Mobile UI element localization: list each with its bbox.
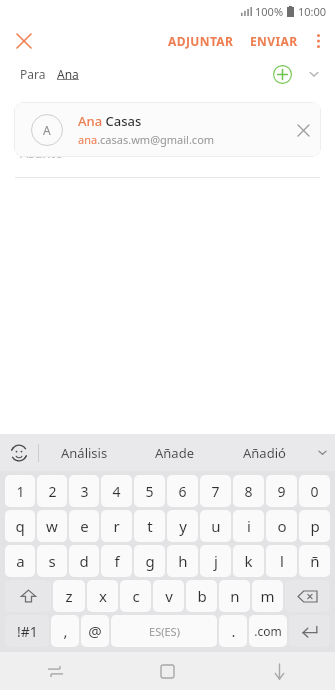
button[interactable]: 2	[37, 475, 67, 507]
button[interactable]: w	[37, 510, 67, 542]
button[interactable]: ES(ES)	[111, 615, 217, 647]
button[interactable]: 0	[299, 475, 330, 507]
staticText: Análisis	[61, 444, 108, 462]
staticText: c	[132, 586, 140, 606]
staticText: 5	[145, 482, 154, 501]
button[interactable]: Añadió	[219, 434, 309, 471]
staticText: u	[211, 516, 221, 536]
button[interactable]: a	[5, 545, 35, 577]
staticText: 2	[48, 482, 57, 501]
staticText: 4	[112, 482, 121, 501]
staticText: b	[197, 586, 207, 606]
staticText: q	[15, 516, 25, 536]
button[interactable]: ñ	[299, 545, 330, 577]
button[interactable]: Borrar	[285, 580, 330, 612]
staticText: Asunto	[20, 144, 64, 162]
button[interactable]: j	[200, 545, 231, 577]
staticText: s	[48, 551, 56, 571]
button[interactable]: g	[134, 545, 165, 577]
button[interactable]: f	[101, 545, 132, 577]
staticText: 6	[178, 482, 187, 501]
button[interactable]: 4	[101, 475, 132, 507]
button[interactable]: 9	[266, 475, 297, 507]
button[interactable]: x	[87, 580, 118, 612]
staticText: ,	[63, 621, 68, 641]
button[interactable]: Emoji	[0, 434, 38, 471]
button[interactable]: s	[37, 545, 67, 577]
staticText: g	[145, 551, 155, 571]
staticText: .	[231, 621, 236, 641]
button[interactable]: Expandir	[301, 61, 327, 87]
button[interactable]: Añade	[129, 434, 219, 471]
staticText: t	[147, 516, 153, 536]
button[interactable]: .	[219, 615, 247, 647]
button[interactable]: Cambiar teclado	[0, 652, 111, 690]
staticText: ana.casas.wm@gmail.com	[78, 132, 215, 147]
button[interactable]: b	[186, 580, 217, 612]
staticText: Añadió	[243, 444, 286, 462]
staticText: !#1	[17, 622, 38, 641]
button[interactable]: Añadir destinatario	[269, 61, 295, 87]
staticText: 7	[211, 482, 220, 501]
button[interactable]: Más sugerencias	[309, 434, 335, 471]
staticText: 0	[310, 482, 319, 501]
staticText: Añade	[155, 444, 194, 462]
button[interactable]: m	[252, 580, 283, 612]
button[interactable]: q	[5, 510, 35, 542]
button[interactable]: r	[101, 510, 132, 542]
staticText: @	[88, 621, 102, 641]
staticText: l	[280, 551, 284, 571]
button[interactable]: o	[266, 510, 297, 542]
staticText: ENVIAR	[250, 33, 298, 49]
button[interactable]: l	[266, 545, 297, 577]
button[interactable]: p	[299, 510, 330, 542]
button[interactable]: y	[167, 510, 198, 542]
button[interactable]: u	[200, 510, 231, 542]
button[interactable]: Recientes	[111, 652, 223, 690]
staticText: y	[179, 516, 187, 536]
button[interactable]: h	[167, 545, 198, 577]
button[interactable]: Quitar	[289, 116, 317, 144]
button[interactable]: 8	[233, 475, 264, 507]
button[interactable]: d	[69, 545, 99, 577]
button[interactable]: 3	[69, 475, 99, 507]
button[interactable]: ADJUNTAR	[162, 25, 240, 57]
button[interactable]: Mayúsculas	[5, 580, 51, 612]
staticText: z	[65, 586, 73, 606]
staticText: j	[214, 551, 218, 571]
button[interactable]: Cerrar	[10, 27, 38, 55]
button[interactable]: n	[219, 580, 250, 612]
staticText: ñ	[310, 551, 320, 571]
button[interactable]: !#1	[5, 615, 49, 647]
staticText: 100%	[255, 4, 284, 19]
button[interactable]: 6	[167, 475, 198, 507]
button[interactable]: Más opciones	[304, 27, 332, 55]
staticText: f	[114, 551, 120, 571]
staticText: o	[277, 516, 287, 536]
button[interactable]: ENVIAR	[244, 25, 304, 57]
staticText: p	[310, 516, 320, 536]
button[interactable]: 7	[200, 475, 231, 507]
staticText: h	[178, 551, 188, 571]
button[interactable]: i	[233, 510, 264, 542]
button[interactable]: c	[120, 580, 151, 612]
staticText: k	[244, 551, 253, 571]
staticText: Ana Casas	[78, 112, 142, 130]
button[interactable]: t	[134, 510, 165, 542]
staticText: e	[80, 516, 89, 536]
button[interactable]: 1	[5, 475, 35, 507]
button[interactable]: @	[81, 615, 109, 647]
button[interactable]: .com	[249, 615, 287, 647]
button[interactable]: Análisis	[39, 434, 129, 471]
button[interactable]: v	[153, 580, 184, 612]
button[interactable]: ,	[51, 615, 79, 647]
staticText: Ana	[57, 66, 79, 82]
button[interactable]: 5	[134, 475, 165, 507]
button[interactable]: Ocultar teclado	[223, 652, 335, 690]
button[interactable]: k	[233, 545, 264, 577]
button[interactable]: e	[69, 510, 99, 542]
button[interactable]: Intro	[289, 615, 330, 647]
button[interactable]: z	[53, 580, 85, 612]
staticText: ADJUNTAR	[168, 33, 234, 49]
button[interactable]: A	[14, 102, 321, 157]
